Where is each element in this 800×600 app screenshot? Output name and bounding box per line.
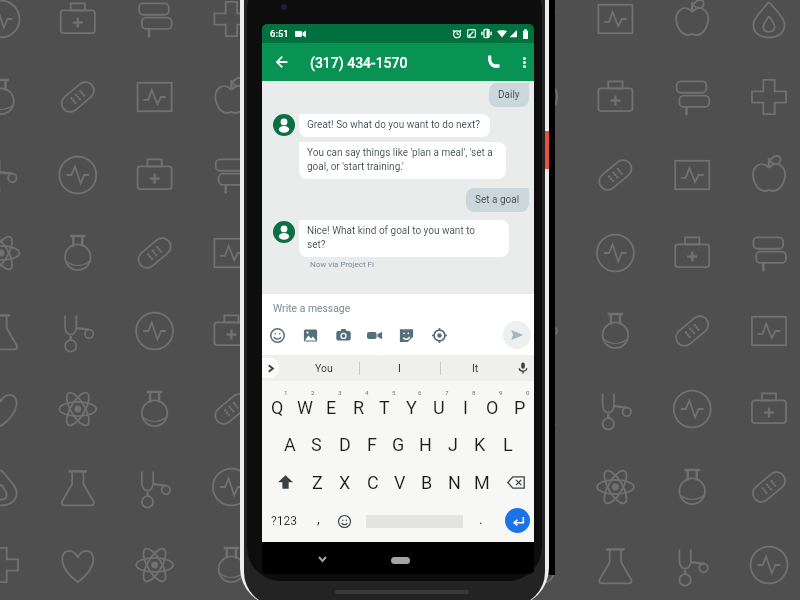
button[interactable]: N [441, 464, 468, 500]
button[interactable]: R [345, 390, 372, 424]
button[interactable]: Call [477, 43, 509, 81]
staticText: 6:51 [270, 28, 289, 39]
staticText: E [326, 397, 337, 418]
button[interactable]: Backspace [502, 464, 530, 500]
button[interactable]: M [468, 464, 495, 500]
button[interactable]: Enter [505, 508, 530, 533]
button[interactable]: Home [391, 557, 410, 564]
staticText: L [503, 434, 513, 455]
staticText: You [315, 362, 333, 374]
button[interactable]: X [331, 464, 358, 500]
button[interactable]: W [291, 390, 318, 424]
button[interactable]: Video [361, 322, 387, 348]
staticText: S [311, 434, 322, 455]
staticText: W [297, 397, 313, 418]
button[interactable]: C [359, 464, 386, 500]
button[interactable]: Sticker [393, 322, 419, 348]
staticText: 0 [526, 389, 530, 396]
staticText: 5 [392, 389, 396, 396]
staticText: You can say things like 'plan a meal', '… [307, 147, 498, 173]
button[interactable]: More options [512, 43, 534, 81]
button[interactable]: B [413, 464, 440, 500]
button[interactable]: I [374, 355, 424, 381]
button[interactable]: S [303, 426, 330, 462]
staticText: Z [312, 472, 323, 493]
staticText: H [419, 434, 432, 455]
button[interactable]: Shift [271, 464, 299, 500]
button[interactable]: U [425, 390, 452, 424]
staticText: ?123 [271, 514, 297, 528]
button[interactable]: V [386, 464, 413, 500]
button[interactable]: D [331, 426, 358, 462]
button[interactable]: Emoji [264, 322, 290, 348]
staticText: (317) 434-1570 [310, 55, 408, 71]
button[interactable]: P [506, 390, 533, 424]
staticText: R [353, 397, 365, 418]
button[interactable]: K [466, 426, 493, 462]
button[interactable]: H [412, 426, 439, 462]
staticText: B [421, 472, 433, 493]
staticText: 1 [284, 389, 288, 396]
button[interactable]: Send [503, 321, 531, 349]
button[interactable]: F [358, 426, 385, 462]
button[interactable]: Q [264, 390, 291, 424]
staticText: I [398, 362, 401, 374]
staticText: I [463, 397, 468, 418]
button[interactable]: Camera [330, 322, 356, 348]
button[interactable]: Y [398, 390, 425, 424]
staticText: 9 [499, 389, 503, 396]
staticText: J [448, 434, 458, 455]
button[interactable]: Voice input [510, 355, 534, 381]
staticText: It [472, 362, 479, 374]
button[interactable]: Hide keyboard [308, 546, 336, 572]
button[interactable]: You can say things like 'plan a meal', '… [299, 142, 506, 179]
button[interactable]: J [439, 426, 466, 462]
staticText: K [474, 434, 486, 455]
staticText: 8 [472, 389, 476, 396]
staticText: X [339, 472, 351, 493]
button[interactable]: L [494, 426, 521, 462]
staticText: V [394, 472, 406, 493]
button[interactable]: Back [266, 43, 298, 81]
button[interactable]: G [385, 426, 412, 462]
button[interactable]: , [307, 501, 329, 537]
button[interactable]: You [299, 355, 349, 381]
button[interactable]: More suggestions [262, 358, 279, 378]
button[interactable]: Nice! What kind of goal to you want to s… [299, 220, 509, 257]
button[interactable]: Location [426, 322, 452, 348]
staticText: Y [406, 397, 417, 418]
staticText: N [448, 472, 461, 493]
staticText: Daily [498, 89, 520, 101]
staticText: 3 [338, 389, 342, 396]
staticText: Write a message [273, 302, 351, 314]
staticText: Set a goal [475, 194, 520, 206]
button[interactable]: Gallery [297, 322, 323, 348]
staticText: A [284, 434, 296, 455]
button[interactable]: ?123 [264, 503, 304, 539]
button[interactable]: T [371, 390, 398, 424]
button[interactable]: I [452, 390, 479, 424]
staticText: C [367, 472, 379, 493]
staticText: G [392, 434, 405, 455]
button[interactable]: Set a goal [466, 188, 529, 212]
button[interactable]: Z [304, 464, 331, 500]
staticText: 7 [445, 389, 449, 396]
button[interactable]: O [479, 390, 506, 424]
staticText: T [379, 397, 390, 418]
button[interactable]: Space [366, 503, 463, 539]
staticText: 4 [365, 389, 369, 396]
staticText: Nice! What kind of goal to you want to s… [307, 225, 476, 251]
button[interactable]: Daily [489, 83, 529, 107]
button[interactable]: Great! So what do you want to do next? [299, 114, 490, 137]
button[interactable]: E [318, 390, 345, 424]
button[interactable]: . [470, 501, 492, 537]
button[interactable]: It [450, 355, 500, 381]
staticText: Great! So what do you want to do next? [307, 119, 480, 131]
staticText: M [474, 472, 490, 493]
staticText: U [433, 397, 445, 418]
staticText: , [317, 511, 320, 527]
button[interactable]: Emoji keyboard [331, 503, 357, 539]
staticText: Q [271, 397, 284, 418]
staticText: D [339, 434, 351, 455]
button[interactable]: A [276, 426, 303, 462]
